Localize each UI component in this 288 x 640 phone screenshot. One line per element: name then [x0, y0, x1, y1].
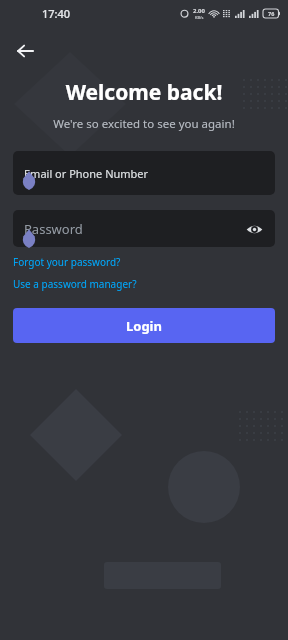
- staticText: Email or Phone Number: [24, 166, 149, 181]
- button[interactable]: Email or Phone Number: [13, 151, 275, 195]
- staticText: We're so excited to see you again!: [0, 116, 288, 132]
- button[interactable]: Show password: [241, 216, 267, 242]
- staticText: 2.00: [193, 7, 205, 15]
- staticText: Login: [126, 317, 162, 335]
- staticText: Password: [24, 220, 83, 238]
- staticText: 76: [268, 10, 275, 17]
- staticText: Use a password manager?: [13, 277, 137, 291]
- staticText: KB/s: [195, 15, 204, 20]
- staticText: Welcome back!: [0, 78, 288, 107]
- button[interactable]: Password: [13, 210, 275, 247]
- button[interactable]: Login: [13, 308, 275, 343]
- button[interactable]: Back: [12, 38, 38, 64]
- staticText: 17:40: [42, 6, 71, 21]
- button[interactable]: Use a password manager?: [13, 277, 137, 291]
- button[interactable]: Forgot your password?: [13, 255, 121, 269]
- staticText: Forgot your password?: [13, 255, 121, 269]
